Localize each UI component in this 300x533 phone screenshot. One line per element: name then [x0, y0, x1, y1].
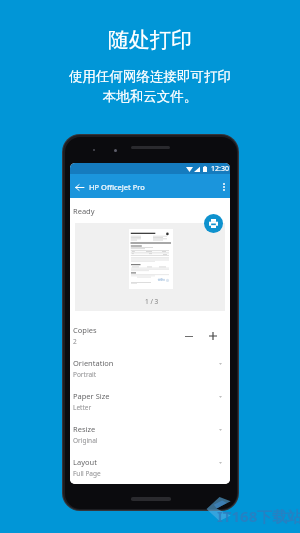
- staticText: Copies: [73, 325, 97, 335]
- staticText: 2: [73, 337, 77, 346]
- button[interactable]: Orientation: [70, 350, 230, 383]
- button[interactable]: Print: [204, 214, 223, 233]
- staticText: Full Page: [73, 469, 101, 478]
- staticText: 1 / 3: [145, 297, 159, 306]
- staticText: Paper Size: [73, 391, 110, 401]
- staticText: Original: [73, 436, 98, 445]
- button[interactable]: Back: [70, 174, 88, 198]
- staticText: Orientation: [73, 358, 114, 368]
- staticText: Layout: [73, 457, 97, 467]
- staticText: 使用任何网络连接即可打印 本地和云文件。: [0, 68, 300, 105]
- staticText: HP OfficeJet Pro: [89, 182, 145, 192]
- staticText: 12:30: [211, 164, 229, 174]
- staticText: Resize: [73, 424, 96, 434]
- staticText: Ready: [73, 206, 95, 216]
- button[interactable]: More options: [214, 174, 230, 198]
- staticText: Portrait: [73, 370, 97, 379]
- button[interactable]: Paper Size: [70, 383, 230, 416]
- staticText: 随处打印: [0, 27, 300, 53]
- button[interactable]: Increase copies: [204, 325, 222, 347]
- button[interactable]: Layout: [70, 449, 230, 482]
- staticText: IT168下载站: [217, 506, 300, 526]
- button[interactable]: Resize: [70, 416, 230, 449]
- button[interactable]: Decrease copies: [180, 325, 198, 347]
- button[interactable]: Copies: [70, 317, 230, 350]
- staticText: Letter: [73, 403, 92, 412]
